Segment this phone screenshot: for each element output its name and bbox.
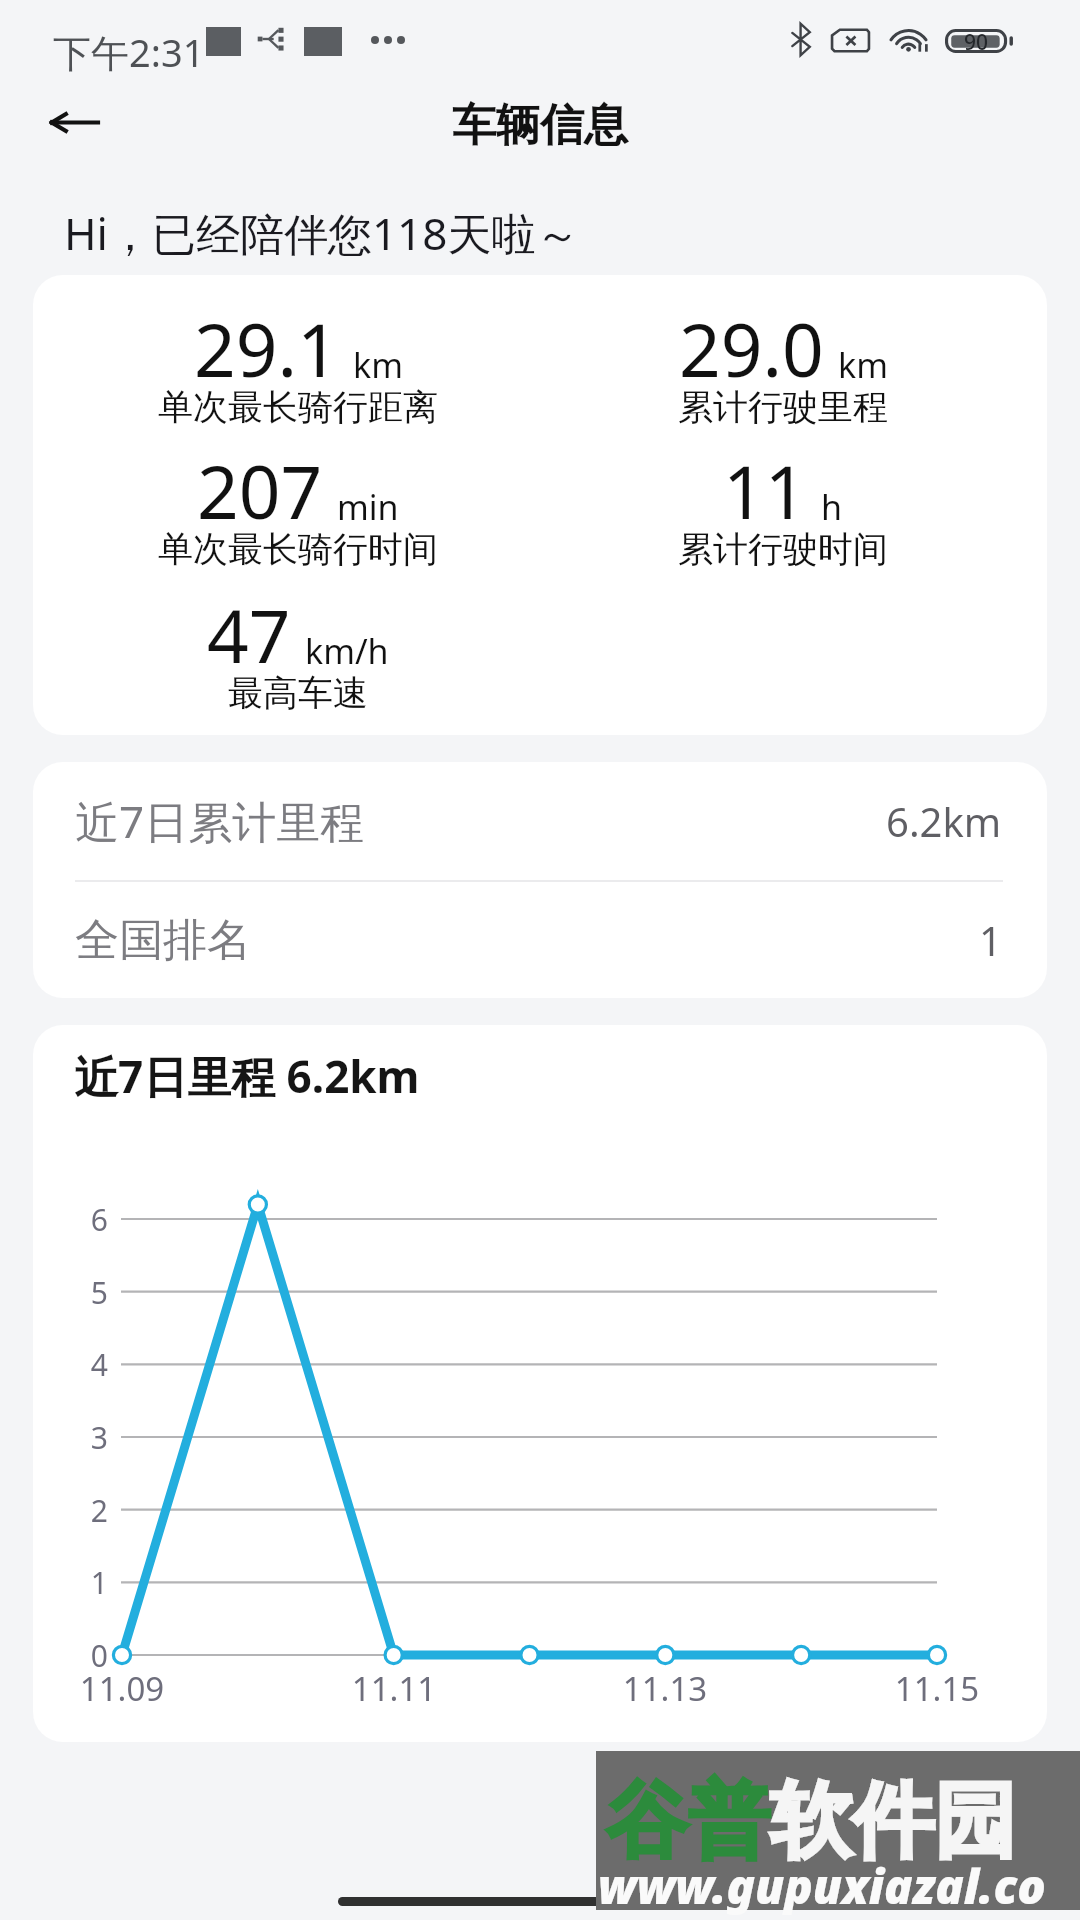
staticText: 最高车速 <box>228 671 368 715</box>
staticText: 5 <box>74 1272 108 1313</box>
staticText: 3 <box>74 1417 108 1458</box>
staticText: 2 <box>74 1490 108 1531</box>
staticText: 0 <box>74 1635 108 1676</box>
staticText: min <box>337 484 399 530</box>
staticText: 单次最长骑行距离 <box>158 385 438 429</box>
staticText: 207 <box>197 441 323 540</box>
staticText: 90 <box>964 28 989 52</box>
staticText: 29.1 <box>194 299 339 398</box>
staticText: 6.2km <box>886 794 1002 848</box>
staticText: 近7日里程 6.2km <box>74 1046 420 1106</box>
staticText: km <box>353 342 403 388</box>
staticText: 11 <box>723 441 807 540</box>
button[interactable]: Back <box>14 83 134 161</box>
button[interactable]: 近7日累计里程 <box>33 762 1047 880</box>
staticText: 1 <box>979 913 1002 967</box>
staticText: 11.09 <box>52 1666 192 1711</box>
staticText: 47 <box>207 585 291 684</box>
staticText: 4 <box>74 1344 108 1385</box>
staticText: 29.0 <box>679 299 824 398</box>
staticText: Hi，已经陪伴您118天啦～ <box>64 203 580 263</box>
staticText: 谷普 <box>606 1770 770 1873</box>
staticText: 下午2:31 <box>53 26 205 78</box>
staticText: 6 <box>74 1199 108 1240</box>
staticText: 单次最长骑行时间 <box>158 527 438 571</box>
staticText: 1 <box>74 1562 108 1603</box>
staticText: www.gupuxiazal.com <box>598 1854 1080 1918</box>
staticText: 车辆信息 <box>452 98 628 153</box>
staticText: h <box>821 484 843 530</box>
staticText: 11.15 <box>867 1666 1007 1711</box>
staticText: km <box>838 342 888 388</box>
staticText: 软件园 <box>770 1770 1016 1873</box>
button[interactable]: 全国排名 <box>33 882 1047 998</box>
staticText: 11.11 <box>324 1666 464 1711</box>
staticText: 全国排名 <box>75 913 251 968</box>
staticText: 近7日累计里程 <box>75 791 365 851</box>
staticText: km/h <box>305 628 389 674</box>
staticText: 累计行驶时间 <box>678 527 888 571</box>
staticText: 累计行驶里程 <box>678 385 888 429</box>
staticText: 11.13 <box>595 1666 735 1711</box>
